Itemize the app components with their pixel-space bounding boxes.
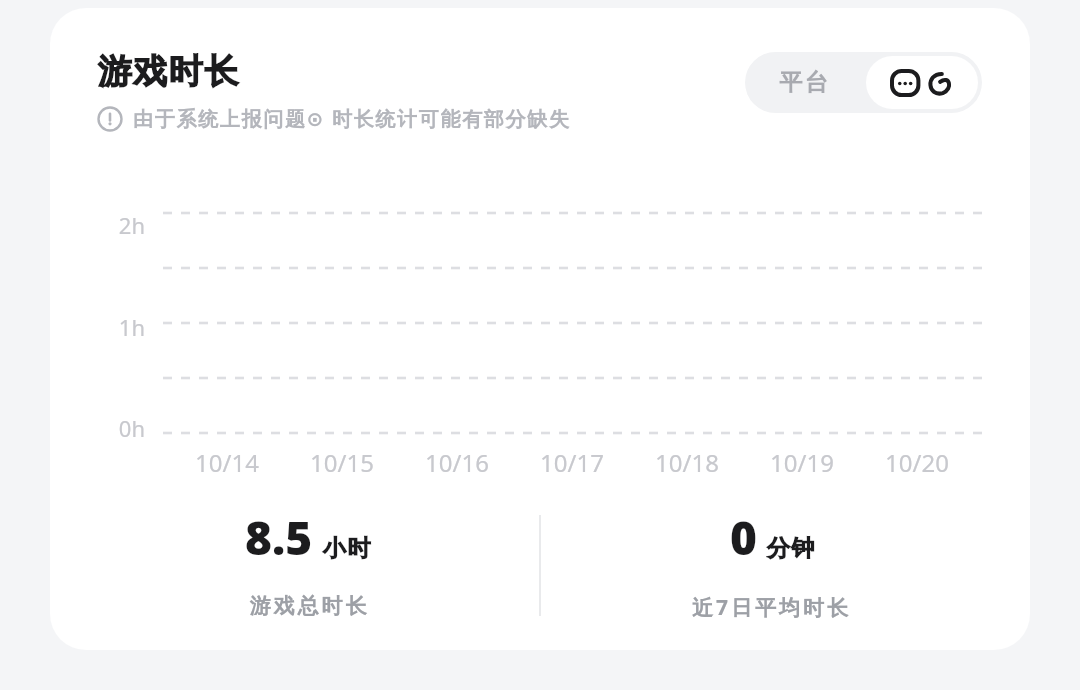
staticText: 近7日平均时长 — [692, 593, 852, 622]
staticText: 8.5 — [245, 506, 313, 569]
staticText: 由于系统上报问题⊙ 时长统计可能有部分缺失 — [133, 105, 571, 132]
staticText: 游戏时长 — [97, 50, 239, 93]
button[interactable]: 平台 — [745, 52, 862, 113]
staticText: 10/14 — [195, 446, 259, 479]
staticText: 0h — [118, 413, 145, 443]
staticText: 1h — [118, 312, 145, 342]
staticText: 10/19 — [770, 446, 834, 479]
staticText: 游戏总时长 — [248, 593, 368, 619]
staticText: 小时 — [322, 534, 371, 563]
staticText: 0 — [730, 506, 757, 569]
staticText: 10/15 — [310, 446, 374, 479]
staticText: 10/17 — [540, 446, 604, 479]
staticText: 分钟 — [766, 534, 815, 563]
staticText: 平台 — [778, 68, 829, 97]
staticText: 2h — [118, 210, 145, 240]
staticText: 10/18 — [655, 446, 719, 479]
staticText: 10/20 — [885, 446, 949, 479]
button[interactable]: 8.5 — [88, 506, 528, 619]
button[interactable]: 0 — [552, 506, 992, 622]
staticText: 10/16 — [425, 446, 489, 479]
button[interactable]: 游戏平台 — [866, 56, 978, 109]
